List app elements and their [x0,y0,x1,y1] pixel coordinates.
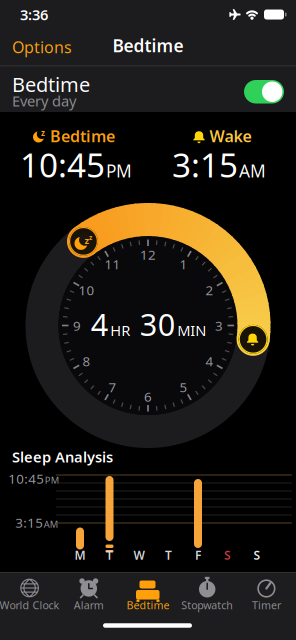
staticText: Bedtime [12,71,90,98]
staticText: 2 [205,281,213,299]
button[interactable]: Alarm [59,574,118,620]
staticText: Timer [252,598,281,612]
staticText: 12 [140,246,156,263]
staticText: 4 [91,304,109,344]
staticText: 3:15 [15,514,43,531]
staticText: AM [44,518,58,530]
staticText: Bedtime [126,598,169,612]
staticText: 10:45 [20,142,105,187]
staticText: 11 [104,255,120,273]
button[interactable]: Stopwatch [178,574,237,620]
staticText: 1 [179,255,187,273]
staticText: Wake [209,125,251,147]
staticText: W [133,547,144,563]
staticText: Bedtime [50,125,115,147]
staticText: 4 [205,352,213,370]
staticText: M [74,547,85,563]
button[interactable]: Options [12,36,72,58]
staticText: HR [110,320,130,340]
staticText: 9 [73,317,81,334]
staticText: AM [239,159,266,182]
staticText: World Clock [0,598,60,612]
staticText: T [165,547,172,563]
button[interactable]: Timer [237,574,296,620]
staticText: Options [12,36,72,58]
staticText: 3:36 [20,5,48,24]
staticText: F [195,547,201,563]
staticText: 8 [82,352,90,370]
button[interactable]: World Clock [0,574,59,620]
staticText: Stopwatch [181,598,233,612]
staticText: T [106,547,113,563]
staticText: PM [106,159,132,182]
staticText: 30 [132,304,176,344]
staticText: 6 [144,388,152,405]
staticText: Alarm [74,598,104,612]
staticText: z [41,128,45,138]
button[interactable] [244,80,284,103]
staticText: 3 [215,317,223,334]
staticText: 10:45 [8,470,44,487]
staticText: S [224,547,231,563]
staticText: Every day [12,91,76,110]
staticText: 3:15 [172,142,238,187]
staticText: Sleep Analysis [12,447,113,466]
staticText: Bedtime [112,34,183,57]
button[interactable]: Bedtime [118,574,178,620]
staticText: 7 [108,378,116,396]
staticText: PM [45,474,59,486]
staticText: 10 [78,281,94,299]
staticText: z [84,234,89,247]
staticText: S [253,547,260,563]
staticText: 5 [179,378,187,396]
staticText: MIN [177,320,206,340]
staticText: z [89,233,92,242]
